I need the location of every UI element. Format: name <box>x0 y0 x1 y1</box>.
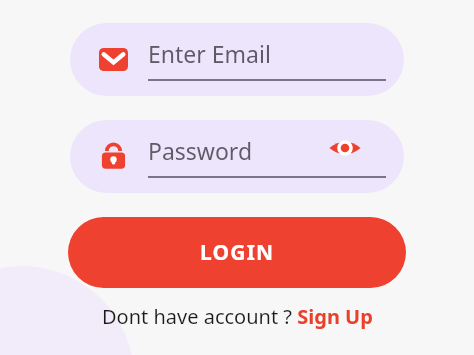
button[interactable]: Enter Email <box>70 23 404 96</box>
staticText: Dont have account ? Sign Up <box>102 303 373 330</box>
staticText: Enter Email <box>148 38 271 69</box>
button[interactable]: Password <box>70 120 404 193</box>
button[interactable]: LOGIN <box>68 217 406 288</box>
staticText: Password <box>148 135 253 166</box>
button[interactable]: Dont have account ? Sign Up <box>102 303 373 330</box>
button[interactable]: Show password <box>328 135 362 161</box>
staticText: LOGIN <box>200 238 275 267</box>
